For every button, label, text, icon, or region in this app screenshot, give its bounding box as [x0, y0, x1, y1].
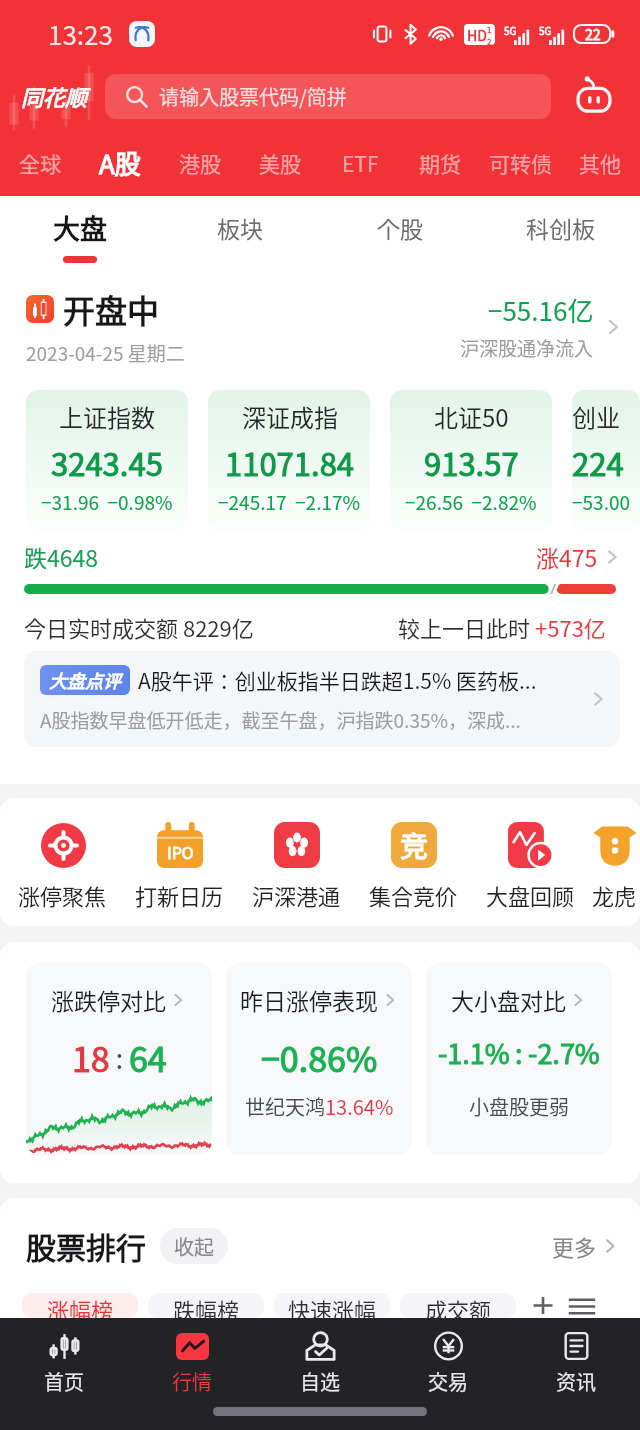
- button[interactable]: Add: [526, 1293, 560, 1318]
- staticText: 请输入股票代码/简拼: [159, 82, 347, 111]
- staticText: −53.00 −2.31%: [572, 488, 640, 516]
- staticText: 龙虎: [592, 879, 637, 911]
- button[interactable]: 全球: [0, 130, 80, 196]
- button[interactable]: 首页: [0, 1318, 128, 1430]
- button[interactable]: 更多: [552, 1230, 620, 1262]
- staticText: A股: [99, 144, 141, 182]
- button[interactable]: 深证成指: [208, 390, 370, 530]
- button[interactable]: 大小盘对比: [426, 963, 612, 1155]
- button[interactable]: IPO: [121, 822, 238, 911]
- staticText: 2240.23: [572, 440, 640, 485]
- button[interactable]: 龙虎: [589, 822, 640, 911]
- button[interactable]: 大盘点评: [24, 651, 620, 747]
- staticText: 13.64%: [325, 1092, 394, 1121]
- staticText: 股票排行: [26, 1224, 146, 1267]
- staticText: 跌4648: [24, 540, 99, 573]
- button[interactable]: 个股: [320, 196, 480, 272]
- button[interactable]: 涨跌停对比: [26, 963, 212, 1155]
- button[interactable]: 自选: [256, 1318, 384, 1430]
- button[interactable]: 资讯: [512, 1318, 640, 1430]
- button[interactable]: 开盘中: [26, 286, 624, 367]
- button[interactable]: 成交额: [400, 1293, 516, 1318]
- staticText: IPO: [167, 840, 194, 863]
- button[interactable]: 创业板: [572, 390, 640, 530]
- staticText: 大盘回顾: [486, 879, 575, 911]
- button[interactable]: 上证指数: [26, 390, 188, 530]
- staticText: 5G: [504, 23, 517, 37]
- staticText: 自选: [300, 1367, 340, 1396]
- button[interactable]: 美股: [240, 130, 320, 196]
- staticText: 2: [487, 36, 492, 45]
- button[interactable]: 行情: [128, 1318, 256, 1430]
- staticText: 大盘: [53, 208, 107, 247]
- staticText: 较上一日此时: [398, 611, 535, 643]
- staticText: 上证指数: [59, 399, 155, 434]
- staticText: 深证成指: [242, 399, 338, 434]
- button[interactable]: 快速涨幅: [274, 1293, 390, 1318]
- staticText: 竞: [400, 825, 429, 866]
- button[interactable]: ETF: [320, 130, 400, 196]
- staticText: 涨475: [536, 540, 598, 573]
- staticText: 涨幅榜: [47, 1293, 114, 1318]
- staticText: 3243.45: [51, 440, 163, 485]
- staticText: −31.96 −0.98%: [41, 488, 173, 516]
- staticText: 首页: [44, 1367, 84, 1396]
- button[interactable]: 昨日涨停表现: [226, 963, 412, 1155]
- button[interactable]: 大盘: [0, 196, 160, 272]
- staticText: 涨停聚焦: [18, 879, 107, 911]
- button[interactable]: 竞: [355, 822, 472, 911]
- button[interactable]: 涨停聚焦: [4, 822, 121, 911]
- button[interactable]: 请输入股票代码/简拼: [105, 74, 551, 119]
- staticText: 集合竞价: [369, 879, 458, 911]
- staticText: 期货: [419, 148, 461, 178]
- staticText: −0.86%: [261, 1033, 378, 1082]
- staticText: 板块: [217, 211, 263, 244]
- staticText: ETF: [342, 148, 379, 178]
- button[interactable]: 期货: [400, 130, 480, 196]
- staticText: 科创板: [526, 211, 595, 244]
- button[interactable]: 收起: [160, 1228, 228, 1264]
- staticText: 沪深港通: [252, 879, 341, 911]
- button[interactable]: 跌幅榜: [148, 1293, 264, 1318]
- button[interactable]: Menu: [560, 1293, 604, 1318]
- button[interactable]: 沪深港通: [238, 822, 355, 911]
- staticText: 大小盘对比: [451, 983, 566, 1016]
- staticText: 18: [72, 1033, 110, 1082]
- staticText: 跌幅榜: [173, 1293, 240, 1318]
- button[interactable]: 其他: [560, 130, 640, 196]
- staticText: 交易: [428, 1367, 468, 1396]
- button[interactable]: 交易: [384, 1318, 512, 1430]
- button[interactable]: 北证50: [390, 390, 552, 530]
- staticText: 11071.84: [225, 440, 355, 485]
- button[interactable]: 科创板: [480, 196, 640, 272]
- button[interactable]: 涨幅榜: [22, 1293, 138, 1318]
- staticText: 5G: [539, 23, 552, 37]
- staticText: 涨跌停对比: [51, 983, 166, 1016]
- staticText: 小盘股更弱: [469, 1092, 569, 1121]
- staticText: 美股: [259, 148, 301, 178]
- staticText: −245.17 −2.17%: [218, 488, 361, 516]
- staticText: HD: [467, 25, 487, 45]
- staticText: 今日实时成交额 8229亿: [24, 611, 254, 643]
- staticText: 昨日涨停表现: [240, 983, 378, 1016]
- staticText: 全球: [19, 148, 61, 178]
- staticText: 行情: [172, 1367, 212, 1396]
- staticText: 1: [487, 24, 492, 36]
- staticText: -1.1% : -2.7%: [438, 1033, 600, 1072]
- staticText: 开盘中: [63, 286, 160, 332]
- button[interactable]: 港股: [160, 130, 240, 196]
- staticText: 港股: [179, 148, 221, 178]
- button[interactable]: 可转债: [480, 130, 560, 196]
- button[interactable]: A股: [80, 130, 160, 196]
- staticText: +573亿: [535, 611, 606, 643]
- staticText: 2023-04-25 星期二: [26, 339, 185, 367]
- button[interactable]: 大盘回顾: [472, 822, 589, 911]
- button[interactable]: 板块: [160, 196, 320, 272]
- staticText: A股午评：创业板指半日跌超1.5% 医药板...: [138, 665, 537, 695]
- button[interactable]: AI assistant: [570, 72, 618, 120]
- staticText: 北证50: [434, 399, 509, 434]
- staticText: 资讯: [556, 1367, 596, 1396]
- staticText: 快速涨幅: [288, 1293, 377, 1318]
- staticText: 更多: [552, 1230, 597, 1262]
- staticText: 收起: [174, 1232, 214, 1261]
